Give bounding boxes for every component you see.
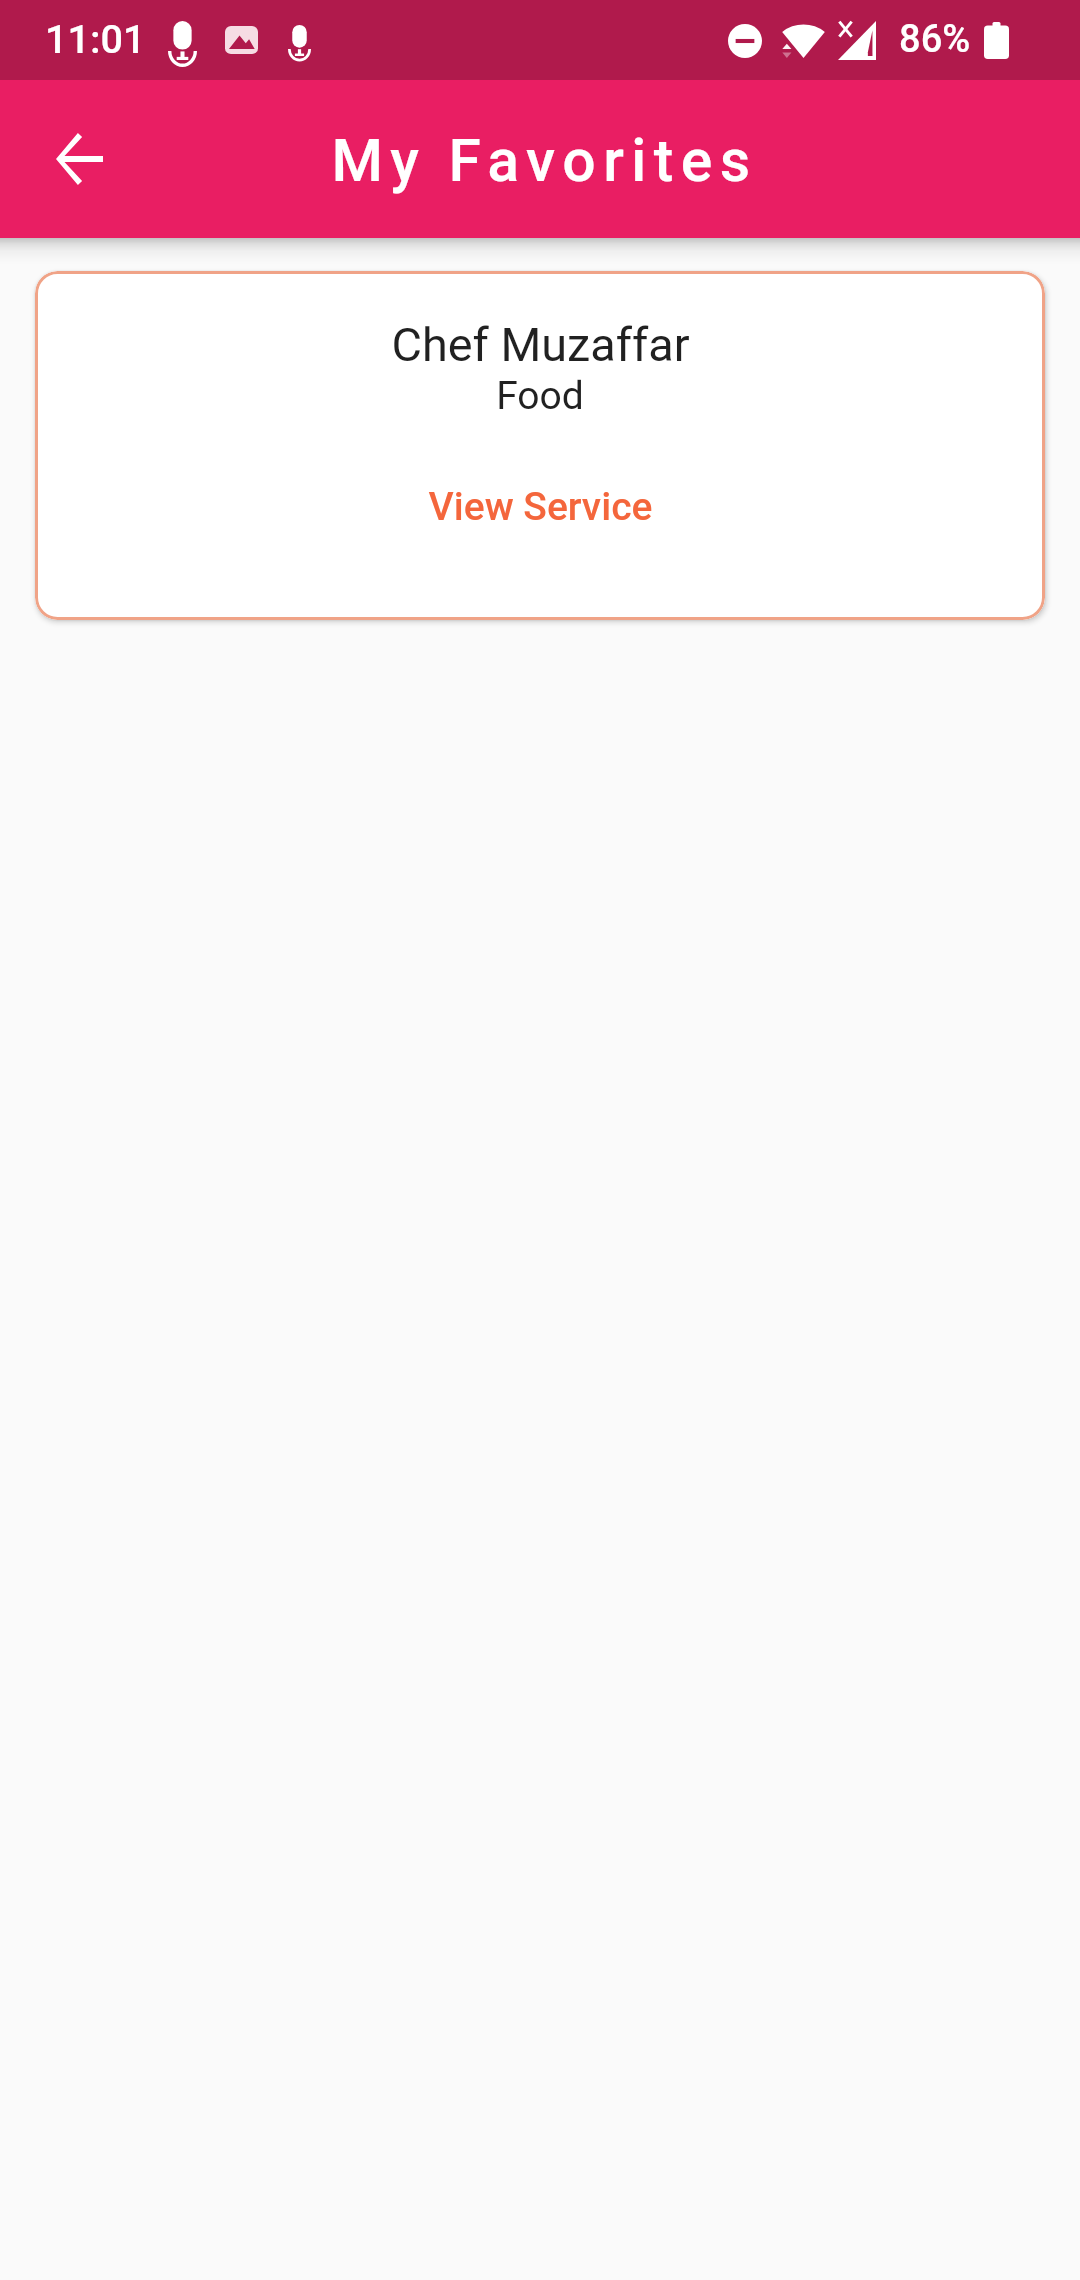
staticText: Chef Muzaffar	[391, 318, 690, 373]
staticText: Food	[496, 373, 584, 419]
button[interactable]: Back	[7, 87, 151, 231]
staticText: View Service	[428, 484, 653, 530]
staticText: My Favorites	[331, 126, 758, 195]
button[interactable]: View Service	[404, 457, 677, 557]
staticText: 86%	[899, 17, 971, 62]
staticText: 11:01	[45, 16, 146, 62]
button[interactable]: Chef Muzaffar	[35, 271, 1045, 620]
